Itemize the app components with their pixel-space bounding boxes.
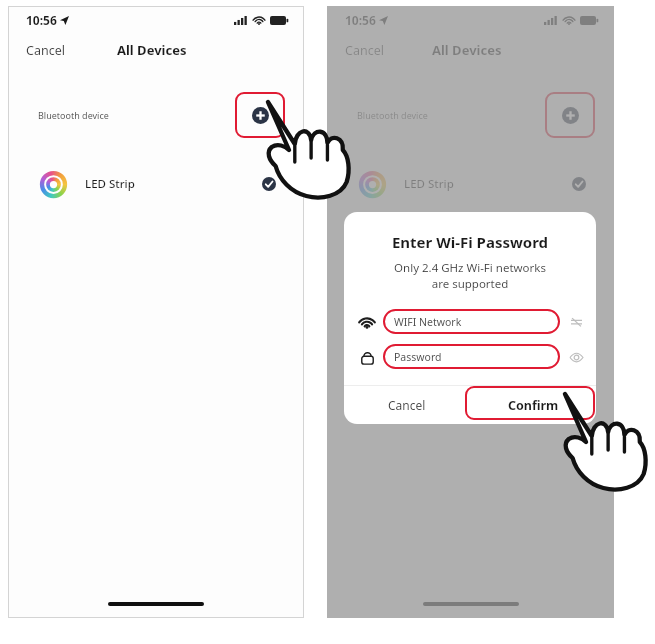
button[interactable]: Add device — [558, 103, 582, 127]
button[interactable]: Wi-Fi network list — [568, 314, 584, 330]
staticText: All Devices — [117, 41, 187, 59]
button[interactable]: Cancel — [341, 38, 388, 63]
button[interactable]: WIFI Network — [383, 309, 560, 334]
staticText: WIFI Network — [394, 315, 462, 329]
staticText: Password — [394, 350, 442, 364]
button[interactable]: Selected — [568, 173, 590, 195]
staticText: All Devices — [432, 41, 502, 59]
staticText: LED Strip — [85, 176, 135, 192]
staticText: 10:56 — [26, 12, 57, 28]
button[interactable]: Add device — [248, 103, 272, 127]
button[interactable]: Confirm — [470, 386, 596, 424]
staticText: Bluetooth device — [38, 109, 109, 121]
button[interactable]: Password — [383, 344, 560, 369]
staticText: Cancel — [345, 42, 384, 59]
button[interactable]: LED Strip — [327, 162, 614, 206]
button[interactable]: Cancel — [344, 386, 470, 424]
button[interactable]: Show password — [568, 349, 584, 365]
staticText: Enter Wi-Fi Password — [344, 232, 596, 252]
button[interactable]: LED Strip — [8, 162, 304, 206]
staticText: Bluetooth device — [357, 109, 428, 121]
button[interactable]: Cancel — [22, 38, 69, 63]
staticText: Cancel — [26, 42, 65, 59]
staticText: Cancel — [388, 397, 426, 413]
staticText: Confirm — [508, 397, 559, 414]
button[interactable]: Selected — [258, 173, 280, 195]
staticText: Only 2.4 GHz Wi-Fi networks are supporte… — [344, 260, 596, 291]
staticText: LED Strip — [404, 176, 454, 192]
staticText: 10:56 — [345, 12, 376, 28]
